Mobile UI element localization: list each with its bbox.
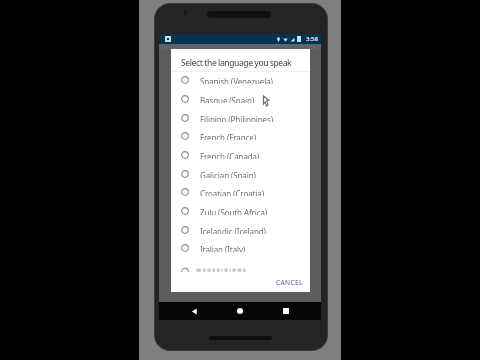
staticText: French (Canada) <box>200 151 260 159</box>
staticText: French (France) <box>200 132 256 140</box>
button[interactable]: Spanish (Venezuela) <box>171 76 310 84</box>
staticText: CANCEL <box>276 278 303 287</box>
button[interactable]: Croatian (Croatia) <box>171 188 310 196</box>
staticText: Spanish (Venezuela) <box>200 76 273 84</box>
button[interactable]: CANCEL <box>273 275 306 290</box>
button[interactable]: French (Canada) <box>171 151 310 159</box>
button[interactable]: French (France) <box>171 132 310 140</box>
staticText: Icelandic (Iceland) <box>200 226 266 234</box>
button[interactable]: Back <box>185 302 203 320</box>
button[interactable]: Home <box>231 302 249 320</box>
button[interactable]: Filipino (Philippines) <box>171 114 310 122</box>
button[interactable]: Recent apps <box>277 302 295 320</box>
button[interactable]: Zulu (South Africa) <box>171 207 310 215</box>
staticText: Zulu (South Africa) <box>200 207 268 215</box>
staticText: Italian (Italy) <box>200 244 246 252</box>
staticText: Galician (Spain) <box>200 170 256 178</box>
staticText: Filipino (Philippines) <box>200 114 273 122</box>
button[interactable]: Icelandic (Iceland) <box>171 226 310 234</box>
button[interactable]: Italian (Italy) <box>171 244 310 252</box>
button[interactable]: Galician (Spain) <box>171 170 310 178</box>
staticText: Basque (Spain) <box>200 95 255 103</box>
staticText: Croatian (Croatia) <box>200 188 264 196</box>
staticText: Select the language you speak <box>181 57 292 69</box>
button[interactable]: Basque (Spain) <box>171 95 310 103</box>
staticText: 3:58 <box>306 35 318 43</box>
